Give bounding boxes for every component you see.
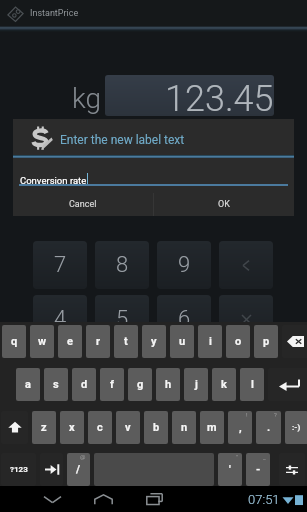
button[interactable]: n bbox=[172, 411, 196, 444]
staticText: / bbox=[76, 463, 81, 476]
staticText: 8 bbox=[116, 252, 129, 278]
staticText: d bbox=[81, 378, 88, 391]
button[interactable]: t bbox=[114, 325, 138, 358]
button[interactable]: 5 bbox=[95, 295, 149, 343]
button[interactable]: x bbox=[60, 411, 84, 444]
staticText: c bbox=[97, 421, 103, 434]
staticText: w bbox=[38, 335, 47, 348]
staticText: l bbox=[251, 378, 254, 391]
staticText: 07:51 bbox=[248, 492, 280, 507]
button[interactable]: 9 bbox=[157, 241, 211, 289]
staticText: " bbox=[236, 453, 238, 460]
button[interactable]: a bbox=[16, 368, 40, 401]
button[interactable]: Tab bbox=[40, 453, 63, 486]
staticText: f bbox=[110, 378, 114, 391]
staticText: j bbox=[195, 378, 198, 391]
staticText: i bbox=[209, 335, 212, 348]
button[interactable]: Home bbox=[81, 486, 125, 512]
staticText: - bbox=[256, 463, 261, 476]
button[interactable]: Clear bbox=[219, 295, 273, 343]
staticText: Enter the new label text bbox=[60, 133, 185, 147]
staticText: o bbox=[235, 335, 242, 348]
button[interactable]: ? bbox=[256, 411, 281, 444]
button[interactable]: s bbox=[44, 368, 68, 401]
button[interactable]: 4 bbox=[33, 295, 87, 343]
button[interactable]: f bbox=[100, 368, 124, 401]
button[interactable]: u bbox=[170, 325, 194, 358]
staticText: b bbox=[153, 421, 160, 434]
staticText: , bbox=[239, 421, 242, 434]
staticText: Cancel bbox=[69, 199, 97, 210]
button[interactable]: Enter bbox=[268, 368, 307, 401]
staticText: m bbox=[207, 421, 217, 434]
button[interactable]: q bbox=[2, 325, 26, 358]
button[interactable]: e bbox=[58, 325, 82, 358]
staticText: OK bbox=[218, 199, 230, 210]
button[interactable]: b bbox=[144, 411, 168, 444]
button[interactable]: Shift bbox=[1, 411, 28, 444]
staticText: 7 bbox=[54, 252, 67, 278]
button[interactable]: Backspace bbox=[219, 241, 273, 289]
button[interactable]: h bbox=[156, 368, 180, 401]
staticText: ' bbox=[229, 463, 231, 476]
button[interactable]: Settings bbox=[279, 453, 305, 486]
staticText: 6 bbox=[178, 306, 191, 332]
button[interactable]: _ bbox=[246, 453, 270, 486]
staticText: z bbox=[41, 421, 47, 434]
button[interactable]: p bbox=[254, 325, 278, 358]
button[interactable]: k bbox=[212, 368, 236, 401]
staticText: :-) bbox=[292, 423, 301, 432]
button[interactable]: z bbox=[32, 411, 56, 444]
staticText: 5 bbox=[116, 306, 129, 332]
button[interactable]: y bbox=[142, 325, 166, 358]
staticText: p bbox=[263, 335, 270, 348]
staticText: e bbox=[67, 335, 73, 348]
button[interactable]: m bbox=[200, 411, 224, 444]
staticText: k bbox=[221, 378, 227, 391]
staticText: q bbox=[11, 335, 18, 348]
staticText: InstantPrice bbox=[30, 8, 79, 19]
button[interactable]: j bbox=[184, 368, 208, 401]
staticText: y bbox=[151, 335, 157, 348]
button[interactable]: w bbox=[30, 325, 54, 358]
staticText: ! bbox=[246, 411, 248, 418]
button[interactable]: :-) bbox=[285, 411, 307, 444]
staticText: t bbox=[124, 335, 128, 348]
button[interactable]: ! bbox=[228, 411, 252, 444]
staticText: Conversion rate bbox=[20, 175, 87, 186]
staticText: 9 bbox=[178, 252, 191, 278]
staticText: s bbox=[53, 378, 59, 391]
button[interactable]: ?123 bbox=[1, 453, 36, 486]
staticText: v bbox=[125, 421, 131, 434]
button[interactable]: @ bbox=[67, 453, 90, 486]
button[interactable]: Cancel bbox=[13, 193, 153, 216]
button[interactable]: OK bbox=[154, 193, 294, 216]
button[interactable]: " bbox=[218, 453, 242, 486]
button[interactable]: 6 bbox=[157, 295, 211, 343]
staticText: ?123 bbox=[10, 465, 28, 474]
staticText: a bbox=[25, 378, 31, 391]
staticText: u bbox=[179, 335, 186, 348]
staticText: @ bbox=[80, 453, 86, 460]
button[interactable]: g bbox=[128, 368, 152, 401]
button[interactable]: v bbox=[116, 411, 140, 444]
button[interactable]: Recents bbox=[132, 486, 176, 512]
button[interactable]: d bbox=[72, 368, 96, 401]
button[interactable]: 8 bbox=[95, 241, 149, 289]
staticText: _ bbox=[263, 453, 266, 460]
staticText: x bbox=[69, 421, 75, 434]
button[interactable]: Hide keyboard bbox=[30, 486, 74, 512]
button[interactable]: c bbox=[88, 411, 112, 444]
button[interactable]: r bbox=[86, 325, 110, 358]
staticText: h bbox=[165, 378, 172, 391]
staticText: . bbox=[267, 421, 271, 434]
button[interactable]: 123.45 bbox=[105, 75, 274, 116]
staticText: r bbox=[96, 335, 101, 348]
button[interactable]: i bbox=[198, 325, 222, 358]
button[interactable]: l bbox=[240, 368, 264, 401]
button[interactable]: o bbox=[226, 325, 250, 358]
staticText: 4 bbox=[54, 306, 67, 332]
button[interactable]: Backspace bbox=[282, 325, 307, 358]
button[interactable]: 7 bbox=[33, 241, 87, 289]
